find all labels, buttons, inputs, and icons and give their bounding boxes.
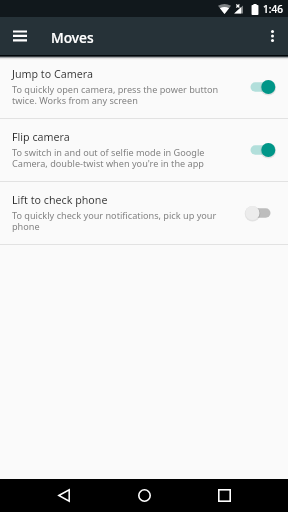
button[interactable]: Lift to check phone	[0, 182, 288, 244]
staticText: To switch in and out of selfie mode in G…	[12, 146, 220, 170]
button[interactable]: Home	[104, 479, 184, 512]
staticText: Flip camera	[12, 130, 70, 145]
button[interactable]: Open navigation drawer	[4, 20, 36, 52]
staticText: To quickly open camera, press the power …	[12, 83, 220, 107]
staticText: Jump to Camera	[12, 67, 93, 82]
staticText: To quickly check your notifications, pic…	[12, 209, 220, 233]
staticText: Moves	[51, 28, 94, 47]
button[interactable]: More options	[256, 20, 288, 52]
button[interactable]: Back	[24, 479, 104, 512]
button[interactable]: Recent apps	[184, 479, 264, 512]
staticText: 1:46	[263, 2, 283, 16]
button[interactable]: Flip camera	[0, 119, 288, 181]
staticText: Lift to check phone	[12, 193, 108, 208]
button[interactable]: Jump to Camera	[0, 56, 288, 118]
